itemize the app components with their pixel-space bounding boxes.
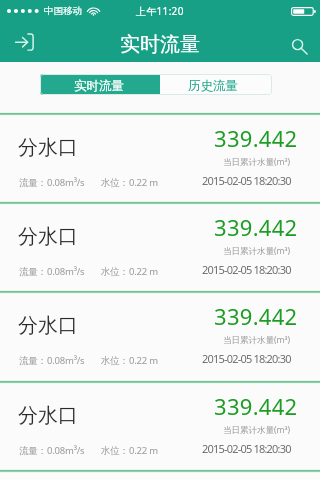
staticText: 339.442 [214,301,298,331]
staticText: 2015-02-05 18:20:30 [202,173,291,188]
staticText: 当日累计水量(m³) [223,156,291,168]
staticText: 2015-02-05 18:20:30 [202,262,291,277]
staticText: 历史流量 [188,78,238,94]
button[interactable]: 历史流量 [160,74,272,95]
button[interactable]: 实时流量 [40,74,160,95]
staticText: 当日累计水量(m³) [223,334,291,346]
button[interactable]: 分水口 [0,380,320,469]
button[interactable]: Log out [6,24,42,60]
staticText: 实时流量 [74,78,124,94]
staticText: 2015-02-05 18:20:30 [202,351,291,366]
staticText: 流量：0.08m³/s [19,265,85,278]
staticText: 当日累计水量(m³) [223,424,291,436]
button[interactable]: 分水口 [0,201,320,290]
staticText: 水位：0.22 m [101,444,158,457]
staticText: 流量：0.08m³/s [19,354,85,367]
staticText: 实时流量 [120,32,200,57]
staticText: 339.442 [214,123,298,153]
staticText: 水位：0.22 m [101,265,158,278]
staticText: 流量：0.08m³/s [19,176,85,189]
staticText: 339.442 [214,212,298,242]
staticText: 当日累计水量(m³) [223,245,291,257]
button[interactable]: 分水口 [0,290,320,380]
button[interactable]: 分水口 [0,112,320,201]
button[interactable]: Search [281,28,317,64]
staticText: 分水口 [18,313,78,338]
staticText: 中国移动 [44,5,82,17]
staticText: 339.442 [214,391,298,421]
staticText: 分水口 [18,135,78,160]
staticText: 分水口 [18,224,78,249]
button[interactable]: 分水口 [0,469,320,480]
staticText: 水位：0.22 m [101,354,158,367]
staticText: 分水口 [18,403,78,428]
staticText: 上午11:20 [136,4,184,18]
staticText: 水位：0.22 m [101,176,158,189]
staticText: 流量：0.08m³/s [19,444,85,457]
staticText: 2015-02-05 18:20:30 [202,441,291,456]
